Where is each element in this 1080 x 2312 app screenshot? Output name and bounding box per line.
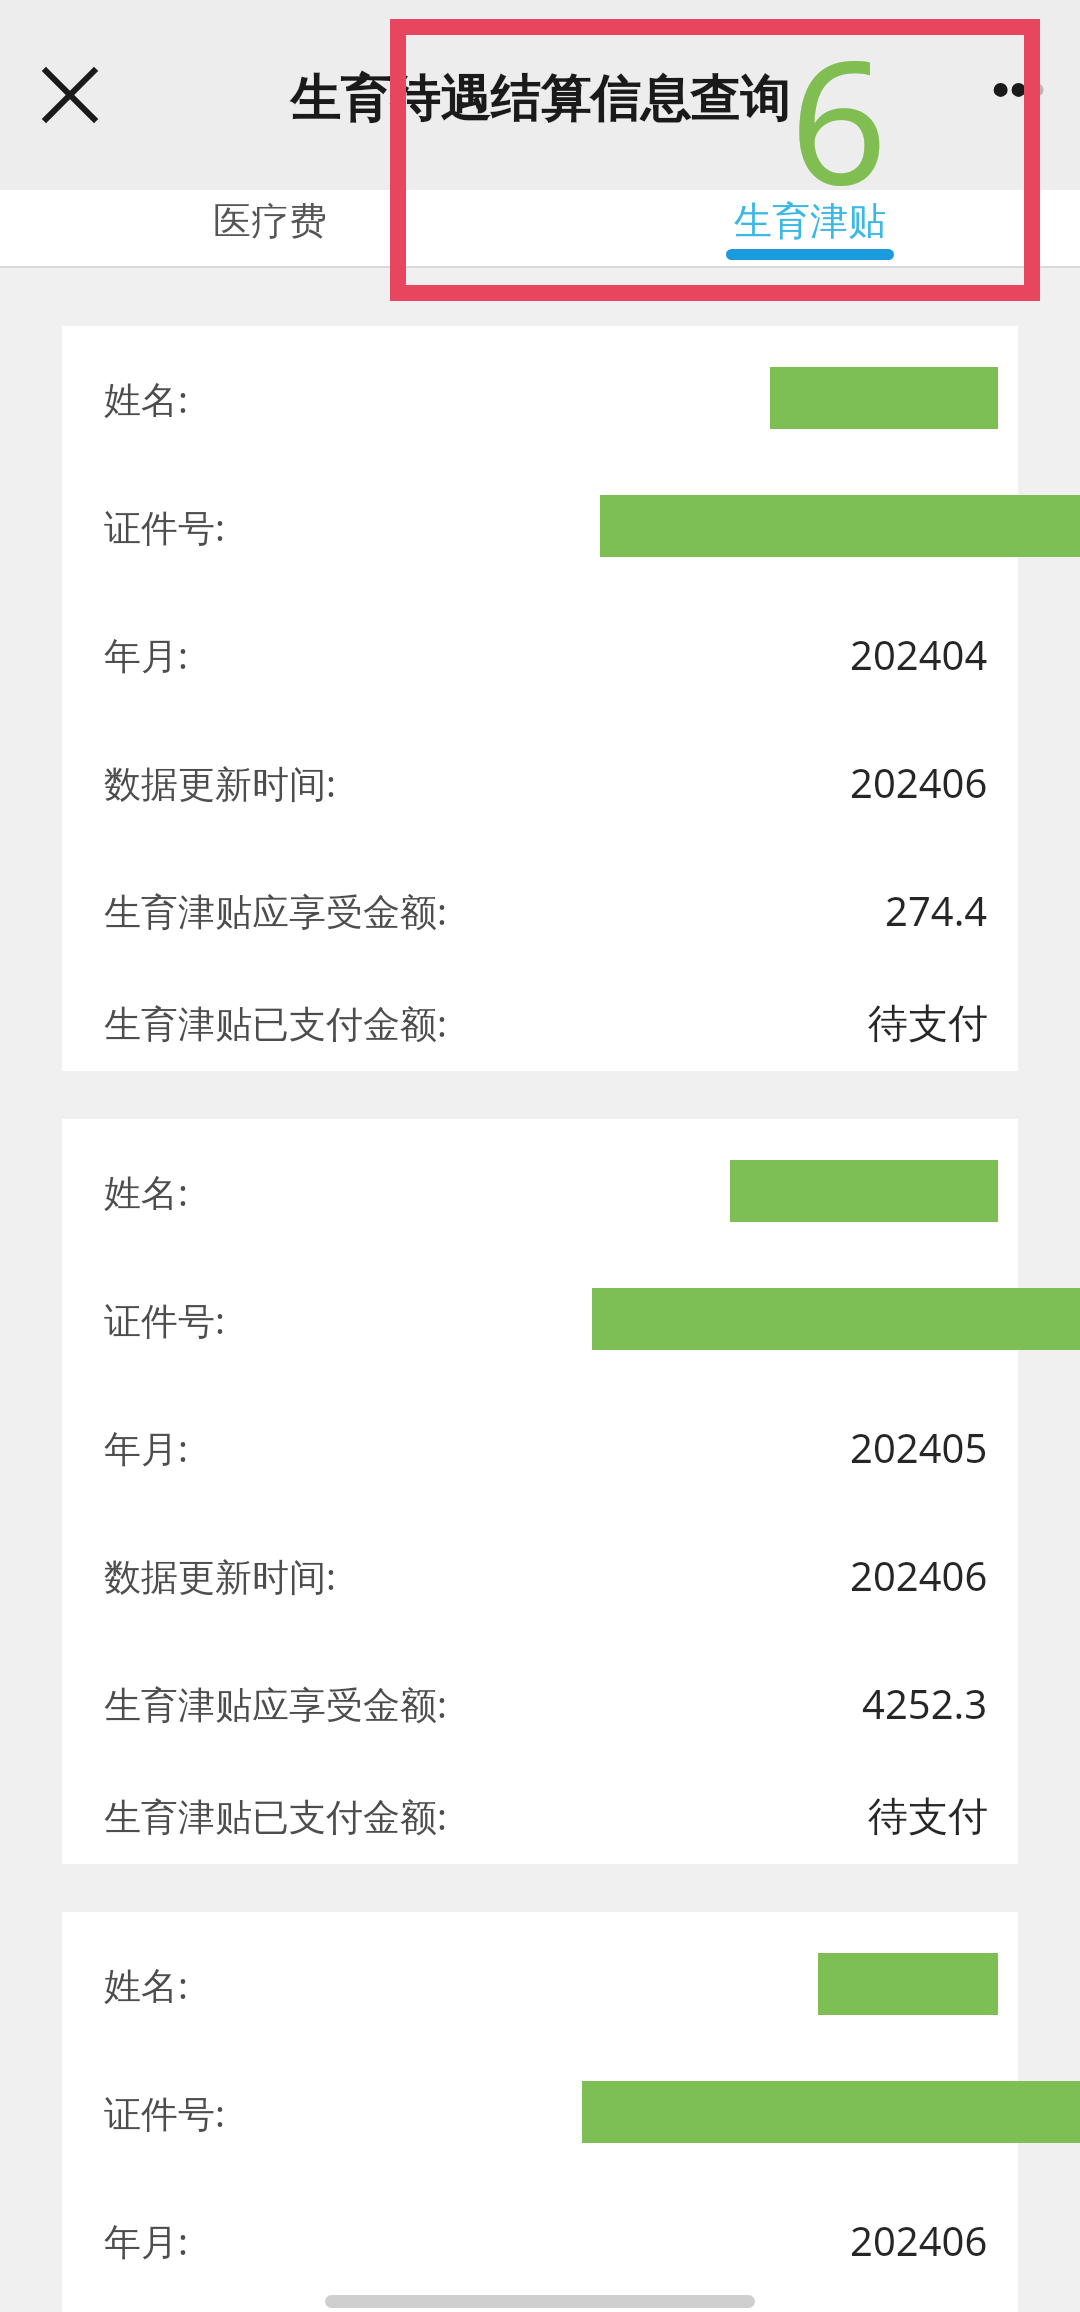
staticText: 年月: [104,2215,188,2266]
staticText: 生育津贴已支付金额: [104,997,447,1048]
staticText: 医疗费 [213,197,327,245]
button[interactable] [62,1912,1018,2312]
staticText: 202404 [850,627,988,681]
staticText: 待支付 [868,1791,988,1841]
staticText: 证件号: [104,2087,225,2138]
button[interactable]: More options [968,47,1064,143]
staticText: 生育津贴已支付金额: [104,1790,447,1841]
staticText: 生育津贴应享受金额: [104,885,447,936]
staticText: 202406 [850,755,988,809]
staticText: 数据更新时间: [104,757,336,808]
staticText: 4252.3 [862,1676,988,1730]
staticText: 姓名: [104,373,188,424]
staticText: 待支付 [868,998,988,1048]
button[interactable]: 医疗费 [0,190,540,268]
staticText: 202406 [850,1548,988,1602]
button[interactable] [62,326,1018,1071]
staticText: 6 [790,2,888,234]
button[interactable]: 生育津贴 [540,190,1080,268]
staticText: 202406 [850,2213,988,2267]
staticText: 年月: [104,629,188,680]
staticText: 生育津贴应享受金额: [104,1678,447,1729]
staticText: 274.4 [885,883,988,937]
staticText: 生育津贴 [734,197,886,245]
staticText: 生育待遇结算信息查询 [290,68,790,131]
staticText: 姓名: [104,1166,188,1217]
staticText: 202405 [850,1420,988,1474]
staticText: 证件号: [104,1294,225,1345]
staticText: 证件号: [104,501,225,552]
button[interactable]: Close [22,47,118,143]
staticText: 数据更新时间: [104,1550,336,1601]
staticText: 年月: [104,1422,188,1473]
staticText: 姓名: [104,1959,188,2010]
button[interactable] [62,1119,1018,1864]
